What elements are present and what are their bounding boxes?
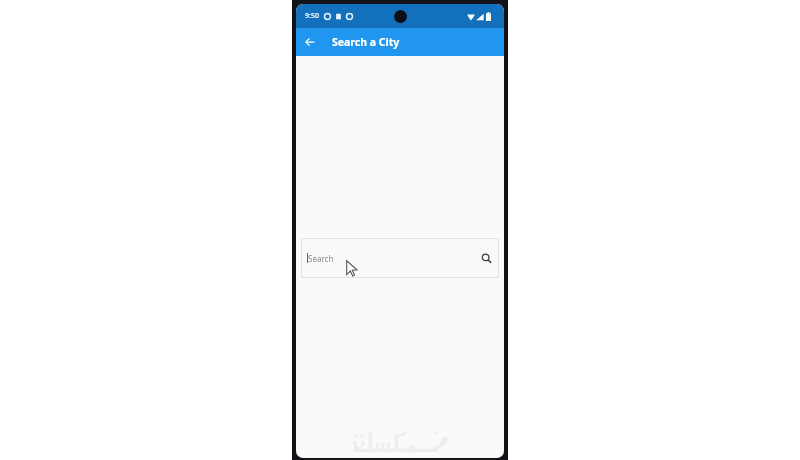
button[interactable]: Search	[478, 250, 494, 266]
button[interactable]: Back	[300, 32, 320, 52]
button[interactable]: Search	[301, 238, 499, 278]
staticText: Search	[308, 253, 334, 264]
staticText: Search a City	[332, 35, 400, 49]
staticText: 9:50	[305, 11, 319, 21]
